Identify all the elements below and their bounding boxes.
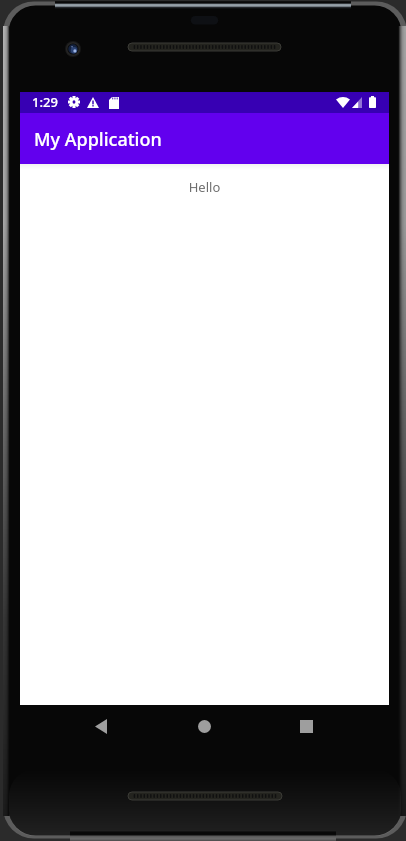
staticText: 1:29 [32,93,58,111]
button[interactable]: Back [75,710,127,742]
button[interactable]: Home [178,710,231,742]
button[interactable]: Recent apps [280,710,333,742]
staticText: My Application [34,127,162,152]
staticText: Hello [20,178,389,196]
